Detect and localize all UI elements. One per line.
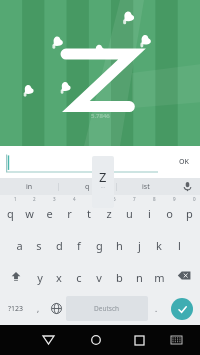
button[interactable]: 3 <box>39 195 59 227</box>
staticText: 7 <box>133 196 136 202</box>
staticText: q <box>85 182 90 192</box>
button[interactable]: 4 <box>59 195 79 227</box>
staticText: ist <box>142 182 150 192</box>
button[interactable]: , <box>30 292 47 325</box>
button[interactable]: Home <box>72 325 120 355</box>
staticText: g <box>96 238 103 253</box>
button[interactable]: Enter <box>171 298 193 320</box>
staticText: i <box>148 206 151 221</box>
staticText: t <box>87 206 91 221</box>
staticText: ... <box>101 183 106 190</box>
staticText: , <box>37 303 40 314</box>
button[interactable]: q <box>59 178 116 195</box>
button[interactable]: in <box>0 178 58 195</box>
staticText: 5.7846 <box>91 112 110 120</box>
button[interactable]: h <box>109 227 129 259</box>
button[interactable]: f <box>69 227 89 259</box>
button[interactable]: ?123 <box>1 292 30 325</box>
staticText: c <box>76 270 82 285</box>
staticText: s <box>36 238 42 253</box>
staticText: 9 <box>173 196 176 202</box>
button[interactable]: ist <box>117 178 174 195</box>
button[interactable]: OK <box>174 154 194 170</box>
button[interactable]: m <box>149 259 169 292</box>
button[interactable]: Hide keyboard <box>24 325 72 355</box>
button[interactable]: 9 <box>159 195 179 227</box>
button[interactable]: l <box>169 227 189 259</box>
staticText: in <box>26 182 33 192</box>
button[interactable]: 7 <box>119 195 139 227</box>
staticText: b <box>116 270 123 285</box>
button[interactable]: a <box>10 227 29 259</box>
staticText: y <box>37 270 43 285</box>
button[interactable]: 1 <box>1 195 20 227</box>
button[interactable]: k <box>149 227 169 259</box>
staticText: e <box>46 206 53 221</box>
staticText: f <box>77 238 81 253</box>
button[interactable]: v <box>89 259 109 292</box>
button[interactable]: 6 <box>99 195 119 227</box>
staticText: l <box>178 238 181 253</box>
button[interactable]: x <box>49 259 69 292</box>
button[interactable]: Shift <box>1 259 30 292</box>
button[interactable]: s <box>29 227 49 259</box>
button[interactable]: b <box>109 259 129 292</box>
button[interactable]: . <box>148 292 165 325</box>
staticText: ?123 <box>8 304 24 314</box>
button[interactable]: 0 <box>179 195 199 227</box>
staticText: n <box>136 270 143 285</box>
staticText: a <box>16 238 23 253</box>
staticText: Z <box>99 168 107 186</box>
button[interactable]: y <box>30 259 49 292</box>
staticText: Deutsch <box>94 304 120 313</box>
staticText: q <box>7 206 14 221</box>
staticText: . <box>155 303 158 314</box>
button[interactable]: 5 <box>79 195 99 227</box>
button[interactable]: Deutsch <box>66 296 148 321</box>
button[interactable] <box>6 151 158 173</box>
staticText: m <box>154 270 165 285</box>
button[interactable]: n <box>129 259 149 292</box>
button[interactable]: 8 <box>139 195 159 227</box>
button[interactable]: 2 <box>20 195 39 227</box>
staticText: j <box>138 238 141 253</box>
button[interactable]: Switch keyboard <box>159 325 193 355</box>
staticText: 6 <box>113 196 116 202</box>
staticText: h <box>116 238 123 253</box>
button[interactable]: Delete <box>169 259 199 292</box>
staticText: 2 <box>33 196 36 202</box>
staticText: v <box>96 270 102 285</box>
staticText: w <box>25 206 34 221</box>
staticText: 4 <box>73 196 76 202</box>
staticText: x <box>56 270 62 285</box>
button[interactable]: Recents <box>120 325 159 355</box>
button[interactable]: d <box>49 227 69 259</box>
button[interactable]: j <box>129 227 149 259</box>
staticText: k <box>156 238 162 253</box>
staticText: OK <box>179 157 189 167</box>
button[interactable]: Voice input <box>174 178 200 195</box>
staticText: 3 <box>53 196 56 202</box>
button[interactable]: g <box>89 227 109 259</box>
staticText: d <box>56 238 63 253</box>
button[interactable]: Change language <box>47 292 66 325</box>
staticText: 0 <box>193 196 196 202</box>
staticText: 1 <box>14 196 17 202</box>
staticText: p <box>186 206 193 221</box>
button[interactable]: c <box>69 259 89 292</box>
staticText: z <box>106 206 112 221</box>
staticText: 8 <box>153 196 156 202</box>
staticText: o <box>166 206 173 221</box>
staticText: u <box>126 206 133 221</box>
staticText: r <box>67 206 72 221</box>
